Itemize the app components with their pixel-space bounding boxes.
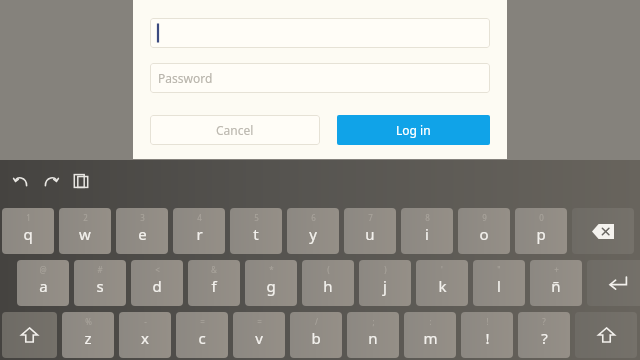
staticText: ;: [372, 316, 375, 327]
staticText: Password: [158, 70, 213, 86]
staticText: ?: [541, 328, 548, 348]
staticText: *: [269, 264, 274, 275]
staticText: -: [144, 316, 147, 327]
button[interactable]: Redo: [38, 168, 64, 194]
button[interactable]: 8: [401, 208, 453, 254]
staticText: Log in: [396, 122, 431, 138]
button[interactable]: 3: [116, 208, 168, 254]
staticText: e: [138, 224, 147, 244]
button[interactable]: 9: [458, 208, 510, 254]
button[interactable]: <: [131, 260, 183, 306]
button[interactable]: :: [404, 312, 456, 358]
button[interactable]: !: [461, 312, 513, 358]
button[interactable]: (: [302, 260, 354, 306]
staticText: o: [479, 224, 489, 244]
button[interactable]: Undo: [8, 168, 34, 194]
staticText: n: [368, 328, 378, 348]
staticText: k: [438, 276, 447, 296]
button[interactable]: #: [74, 260, 126, 306]
staticText: 3: [140, 212, 145, 223]
staticText: f: [211, 276, 217, 296]
staticText: x: [141, 328, 149, 348]
staticText: 6: [311, 212, 316, 223]
button[interactable]: ): [359, 260, 411, 306]
button[interactable]: 2: [59, 208, 111, 254]
button[interactable]: @: [17, 260, 69, 306]
button[interactable]: ?: [518, 312, 570, 358]
button[interactable]: ": [473, 260, 525, 306]
staticText: u: [365, 224, 375, 244]
staticText: 8: [425, 212, 430, 223]
staticText: (: [327, 264, 330, 275]
button[interactable]: Password: [150, 63, 490, 93]
button[interactable]: &: [188, 260, 240, 306]
staticText: Cancel: [216, 122, 254, 138]
staticText: ": [497, 264, 501, 275]
staticText: <: [155, 264, 160, 275]
button[interactable]: +: [530, 260, 582, 306]
staticText: #: [97, 264, 103, 275]
staticText: d: [152, 276, 162, 296]
staticText: 0: [539, 212, 544, 223]
staticText: v: [255, 328, 263, 348]
staticText: s: [96, 276, 104, 296]
staticText: 2: [83, 212, 88, 223]
staticText: a: [39, 276, 48, 296]
staticText: i: [425, 224, 429, 244]
staticText: l: [497, 276, 501, 296]
button[interactable]: =: [233, 312, 285, 358]
button[interactable]: Cancel: [150, 115, 320, 145]
button[interactable]: ': [416, 260, 468, 306]
staticText: :: [429, 316, 432, 327]
staticText: 5: [254, 212, 259, 223]
staticText: !: [485, 328, 490, 348]
staticText: +: [554, 264, 559, 275]
staticText: j: [383, 276, 387, 296]
button[interactable]: Clipboard: [68, 168, 94, 194]
staticText: ): [384, 264, 387, 275]
staticText: w: [79, 224, 91, 244]
button[interactable]: 5: [230, 208, 282, 254]
button[interactable]: 4: [173, 208, 225, 254]
staticText: p: [536, 224, 546, 244]
staticText: r: [196, 224, 203, 244]
staticText: 7: [368, 212, 373, 223]
button[interactable]: [150, 18, 490, 48]
button[interactable]: ;: [347, 312, 399, 358]
button[interactable]: *: [245, 260, 297, 306]
button[interactable]: Shift: [575, 312, 637, 358]
staticText: !: [486, 316, 489, 327]
button[interactable]: /: [290, 312, 342, 358]
button[interactable]: 7: [344, 208, 396, 254]
button[interactable]: 0: [515, 208, 567, 254]
button[interactable]: -: [119, 312, 171, 358]
staticText: 9: [482, 212, 487, 223]
button[interactable]: Shift: [2, 312, 57, 358]
button[interactable]: Enter: [587, 260, 640, 306]
staticText: y: [309, 224, 317, 244]
button[interactable]: Log in: [337, 115, 490, 145]
staticText: ': [441, 264, 443, 275]
button[interactable]: 1: [2, 208, 54, 254]
staticText: 4: [197, 212, 202, 223]
staticText: &: [211, 264, 217, 275]
staticText: m: [423, 328, 438, 348]
staticText: /: [315, 316, 318, 327]
staticText: ?: [542, 316, 546, 327]
button[interactable]: 6: [287, 208, 339, 254]
staticText: q: [23, 224, 33, 244]
staticText: =: [257, 316, 262, 327]
button[interactable]: %: [62, 312, 114, 358]
staticText: c: [198, 328, 206, 348]
staticText: t: [253, 224, 259, 244]
staticText: %: [85, 316, 92, 327]
button[interactable]: =: [176, 312, 228, 358]
staticText: 1: [26, 212, 31, 223]
staticText: b: [311, 328, 321, 348]
staticText: ñ: [551, 276, 561, 296]
staticText: z: [84, 328, 92, 348]
staticText: h: [323, 276, 333, 296]
staticText: g: [266, 276, 276, 296]
button[interactable]: Backspace: [572, 208, 634, 254]
staticText: @: [39, 264, 47, 275]
